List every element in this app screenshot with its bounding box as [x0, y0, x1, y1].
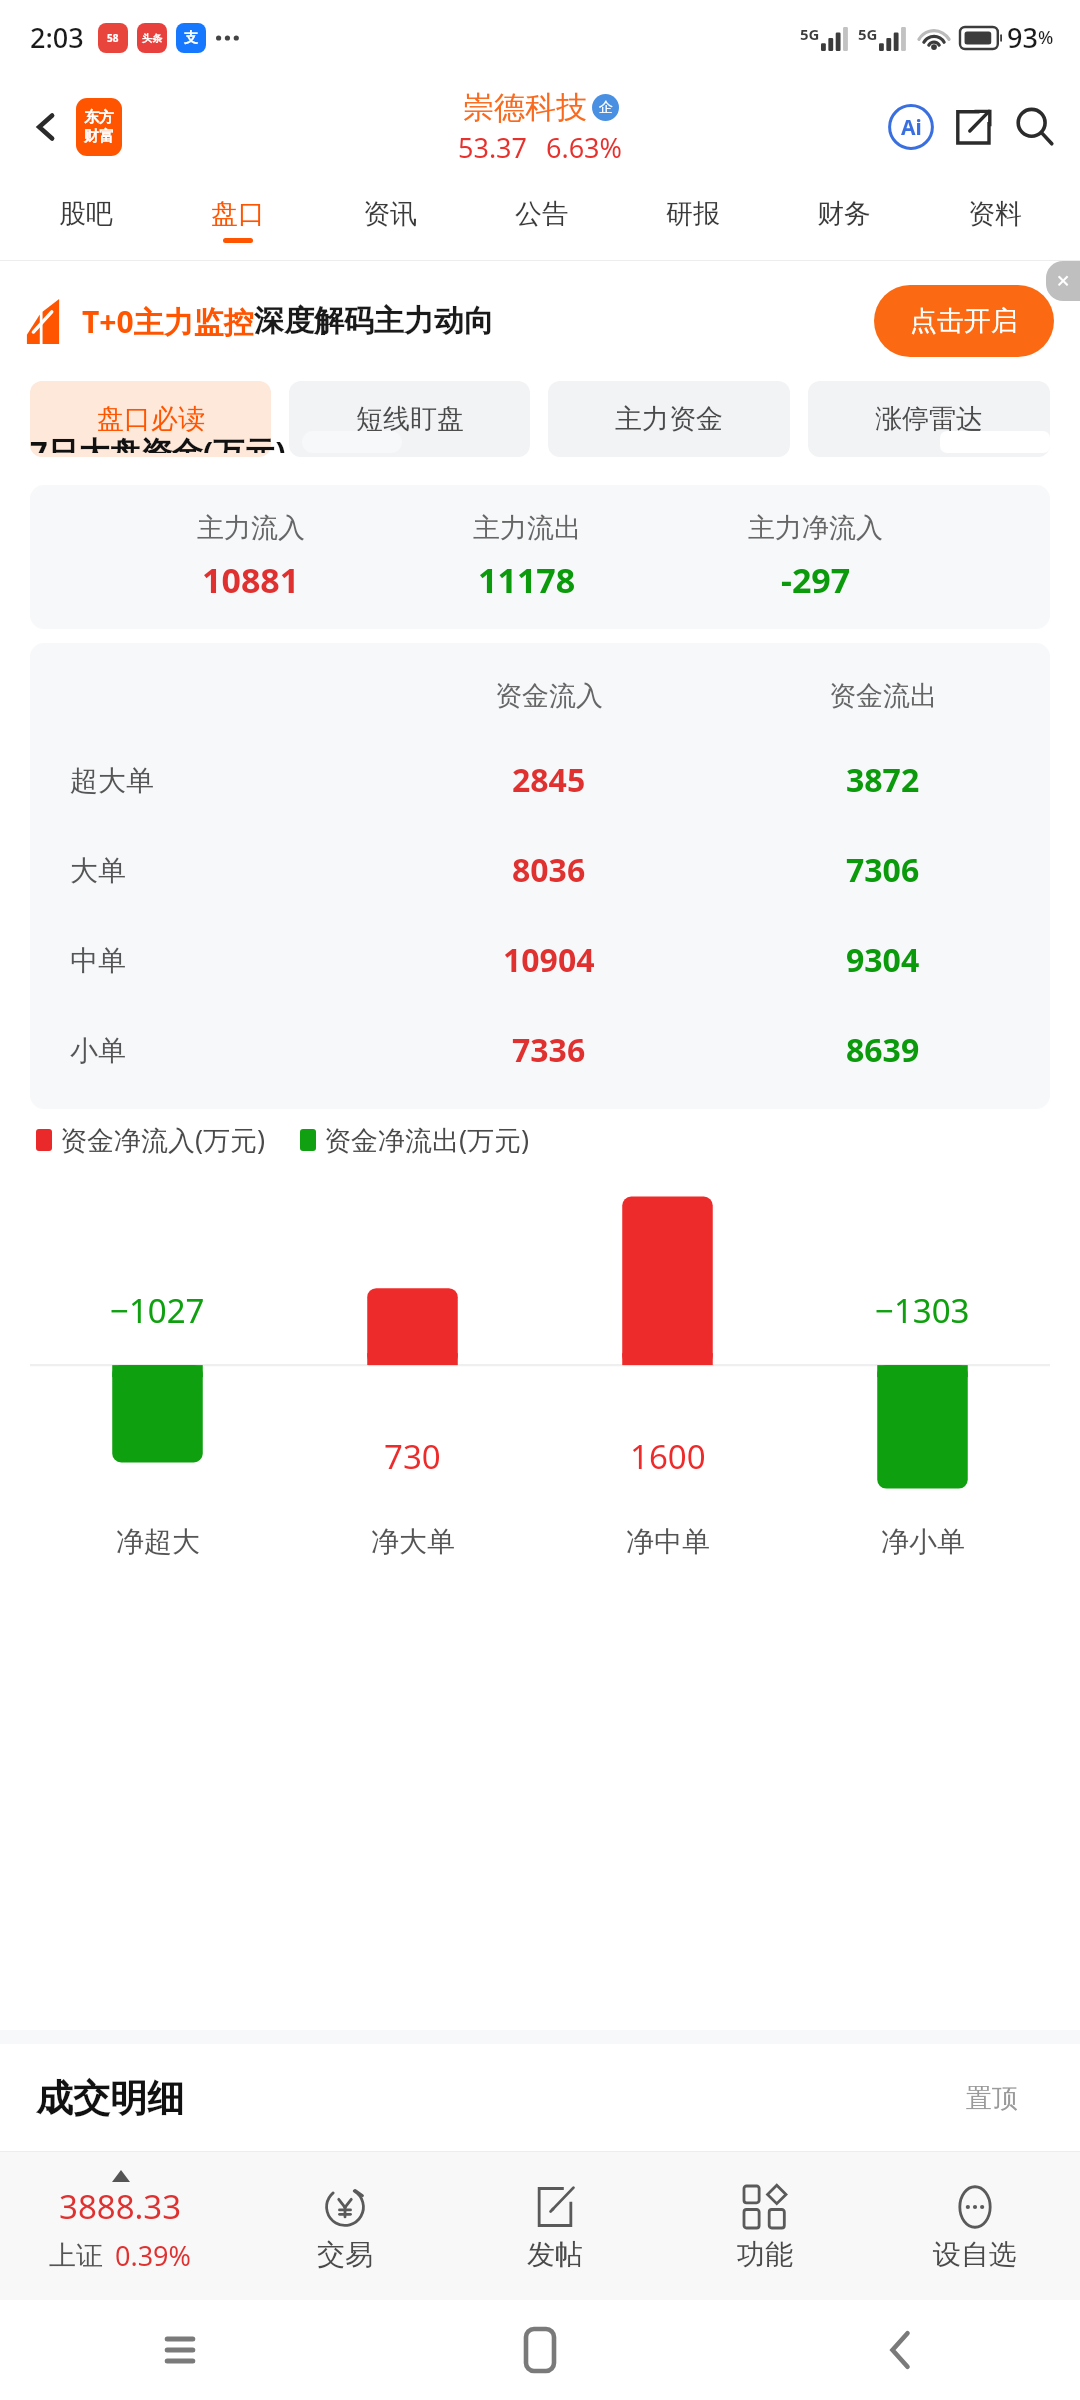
button[interactable]: 分享 — [942, 96, 1004, 158]
button[interactable]: 超大单 — [30, 735, 1050, 825]
button[interactable]: 点击开启 — [874, 285, 1054, 357]
staticText: 净超大 — [116, 1524, 200, 1559]
staticText: 资金净流出(万元) — [324, 1121, 530, 1158]
staticText: 主力净流入 — [748, 511, 883, 545]
staticText: 发帖 — [527, 2237, 583, 2272]
staticText: 上证 — [49, 2239, 103, 2273]
staticText: 财务 — [817, 197, 871, 231]
staticText: 2:03 — [30, 19, 84, 56]
staticText: 交易 — [317, 2237, 373, 2272]
button[interactable]: 主力流入 — [30, 485, 1050, 629]
staticText: % — [1038, 25, 1054, 50]
staticText: 超大单 — [70, 763, 154, 798]
staticText: 8639 — [846, 1028, 920, 1072]
button[interactable]: 设自选 — [870, 2152, 1080, 2300]
staticText: Ai — [901, 113, 922, 142]
staticText: T+0主力监控 — [82, 301, 254, 342]
staticText: 资金流出 — [829, 679, 937, 713]
button[interactable]: 主力资金 — [548, 381, 790, 457]
staticText: ✕ — [1056, 271, 1071, 291]
staticText: 盘口必读 — [97, 402, 205, 436]
staticText: 功能 — [737, 2237, 793, 2272]
staticText: 资料 — [968, 197, 1022, 231]
button[interactable]: 东方财富 — [76, 98, 122, 156]
staticText: 置顶 — [966, 2082, 1018, 2115]
button[interactable]: 最近任务 — [0, 2300, 360, 2400]
staticText: 点击开启 — [910, 304, 1018, 338]
staticText: 盘口 — [211, 197, 265, 231]
staticText: 1600 — [630, 1434, 706, 1479]
staticText: 5G — [858, 24, 878, 44]
button[interactable]: 功能 — [660, 2152, 870, 2300]
staticText: 7306 — [846, 848, 920, 892]
staticText: 净中单 — [626, 1524, 710, 1559]
staticText: 净小单 — [881, 1524, 965, 1559]
button[interactable]: 股吧 — [10, 180, 162, 260]
staticText: 0.39% — [115, 2237, 192, 2274]
staticText: 中单 — [70, 943, 126, 978]
button[interactable]: 短线盯盘 — [289, 381, 530, 457]
staticText: 58 — [107, 31, 119, 45]
staticText: 小单 — [70, 1033, 126, 1068]
button[interactable]: 小单 — [30, 1005, 1050, 1095]
button[interactable]: 搜索 — [1004, 96, 1066, 158]
staticText: 53.37 — [458, 129, 528, 166]
staticText: 支 — [184, 29, 198, 47]
staticText: 3872 — [846, 758, 920, 802]
staticText: 资讯 — [363, 197, 417, 231]
button[interactable]: 公告 — [466, 180, 617, 260]
staticText: 7日大盘资金(万元) — [30, 431, 286, 453]
button[interactable]: 交易 — [240, 2152, 450, 2300]
staticText: 短线盯盘 — [356, 402, 464, 436]
button[interactable]: 发帖 — [450, 2152, 660, 2300]
staticText: 10904 — [503, 938, 595, 982]
staticText: −1027 — [110, 1288, 205, 1333]
button[interactable]: 资料 — [919, 180, 1070, 260]
button[interactable]: 返回 — [18, 99, 74, 155]
staticText: 企 — [599, 99, 613, 117]
button[interactable]: AI 助手 — [880, 96, 942, 158]
staticText: 东方 — [84, 108, 114, 127]
staticText: 设自选 — [933, 2237, 1017, 2272]
staticText: −1303 — [875, 1288, 970, 1333]
staticText: 涨停雷达 — [875, 402, 983, 436]
staticText: 股吧 — [59, 197, 113, 231]
staticText: 头条 — [142, 32, 162, 45]
staticText: 730 — [384, 1434, 441, 1479]
button[interactable]: −1027 — [30, 1164, 1050, 1606]
staticText: 崇德科技 — [463, 88, 587, 127]
staticText: 大单 — [70, 853, 126, 888]
button[interactable]: 大单 — [30, 825, 1050, 915]
button[interactable]: 涨停雷达 — [808, 381, 1050, 457]
button[interactable]: 财务 — [768, 180, 919, 260]
staticText: 主力流出 — [473, 511, 581, 545]
staticText: 净大单 — [371, 1524, 455, 1559]
staticText: 8036 — [512, 848, 586, 892]
button[interactable]: 盘口必读 — [30, 381, 271, 457]
staticText: 资金净流入(万元) — [60, 1121, 266, 1158]
button[interactable]: 盘口 — [162, 180, 314, 260]
staticText: 11178 — [478, 557, 576, 603]
staticText: 9304 — [846, 938, 920, 982]
button[interactable]: 关闭广告 — [1046, 261, 1080, 301]
staticText: 研报 — [666, 197, 720, 231]
staticText: 10881 — [202, 557, 300, 603]
staticText: 成交明细 — [36, 2075, 184, 2122]
staticText: 主力资金 — [615, 402, 723, 436]
button[interactable]: 返回 — [720, 2300, 1080, 2400]
staticText: 2845 — [512, 758, 586, 802]
staticText: 财富 — [84, 127, 114, 146]
button[interactable]: 研报 — [617, 180, 768, 260]
button[interactable]: 中单 — [30, 915, 1050, 1005]
staticText: 主力流入 — [197, 511, 305, 545]
staticText: -297 — [781, 557, 851, 603]
button[interactable]: 置顶 — [936, 2070, 1048, 2126]
staticText: 6.63% — [546, 129, 623, 166]
staticText: 3888.33 — [59, 2184, 182, 2229]
staticText: 公告 — [515, 197, 569, 231]
staticText: 93 — [1007, 19, 1038, 56]
button[interactable]: 3888.33 — [0, 2152, 240, 2300]
staticText: 5G — [800, 24, 820, 44]
button[interactable]: 资讯 — [314, 180, 466, 260]
button[interactable]: 主页 — [360, 2300, 720, 2400]
